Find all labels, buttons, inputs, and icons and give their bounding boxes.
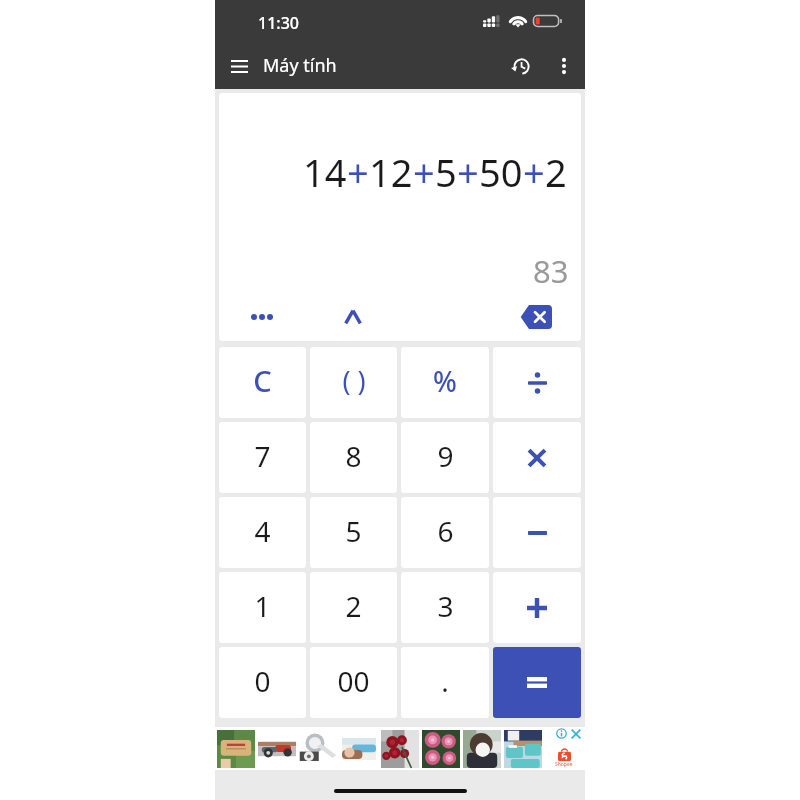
button[interactable]: Ad image <box>258 730 296 768</box>
button[interactable]: . <box>401 647 489 718</box>
button[interactable] <box>493 422 581 493</box>
staticText: % <box>433 362 457 400</box>
button[interactable]: Menu <box>219 46 259 86</box>
button[interactable]: 3 <box>401 572 489 643</box>
button[interactable]: Backspace <box>516 301 556 333</box>
staticText: 9 <box>437 437 454 475</box>
button[interactable] <box>493 572 581 643</box>
button[interactable]: More options <box>543 45 585 87</box>
button[interactable]: 9 <box>401 422 489 493</box>
staticText: 2 <box>545 146 567 198</box>
button[interactable]: More <box>245 300 279 334</box>
button[interactable]: 2 <box>310 572 397 643</box>
button[interactable] <box>493 647 581 718</box>
button[interactable] <box>493 497 581 568</box>
button[interactable]: Ad image <box>299 730 337 768</box>
button[interactable]: C <box>219 347 306 418</box>
staticText: 0 <box>254 662 271 700</box>
staticText: 8 <box>345 437 362 475</box>
staticText: 5 <box>435 146 457 198</box>
button[interactable]: Ad image <box>340 730 378 768</box>
button[interactable]: 6 <box>401 497 489 568</box>
button[interactable]: Ad image <box>381 730 419 768</box>
button[interactable]: % <box>401 347 489 418</box>
button[interactable]: 0 <box>219 647 306 718</box>
button[interactable]: Close ad <box>571 729 581 739</box>
staticText: 2 <box>345 587 362 625</box>
button[interactable]: 5 <box>310 497 397 568</box>
button[interactable]: Expand <box>334 298 372 336</box>
staticText: 4 <box>254 512 271 550</box>
staticText: 3 <box>437 587 454 625</box>
staticText: C <box>253 361 272 400</box>
button[interactable]: Ad image <box>422 730 460 768</box>
staticText: 12 <box>369 146 413 198</box>
staticText: + <box>523 146 545 198</box>
staticText: 14 <box>303 146 347 198</box>
staticText: 00 <box>337 662 370 700</box>
staticText: 83 <box>533 250 569 292</box>
staticText: ( ) <box>342 362 366 399</box>
staticText: . <box>441 662 449 700</box>
button[interactable]: Ad image <box>217 730 255 768</box>
button[interactable]: 00 <box>310 647 397 718</box>
button[interactable] <box>493 347 581 418</box>
button[interactable]: 8 <box>310 422 397 493</box>
button[interactable]: Ad info <box>556 728 567 739</box>
button[interactable]: Ad image <box>504 730 542 768</box>
button[interactable]: 4 <box>219 497 306 568</box>
staticText: 7 <box>254 437 271 475</box>
staticText: 5 <box>345 512 362 550</box>
staticText: + <box>457 146 479 198</box>
button[interactable]: 7 <box>219 422 306 493</box>
staticText: + <box>413 146 435 198</box>
staticText: + <box>347 146 369 198</box>
staticText: 11:30 <box>258 12 299 34</box>
staticText: Máy tính <box>263 53 337 78</box>
staticText: 50 <box>479 146 523 198</box>
button[interactable]: Ad image <box>463 730 501 768</box>
staticText: 6 <box>437 512 454 550</box>
staticText: 1 <box>254 587 271 625</box>
staticText: Shopee <box>555 761 573 768</box>
button[interactable]: 1 <box>219 572 306 643</box>
button[interactable]: ( ) <box>310 347 397 418</box>
button[interactable]: History <box>497 43 543 89</box>
